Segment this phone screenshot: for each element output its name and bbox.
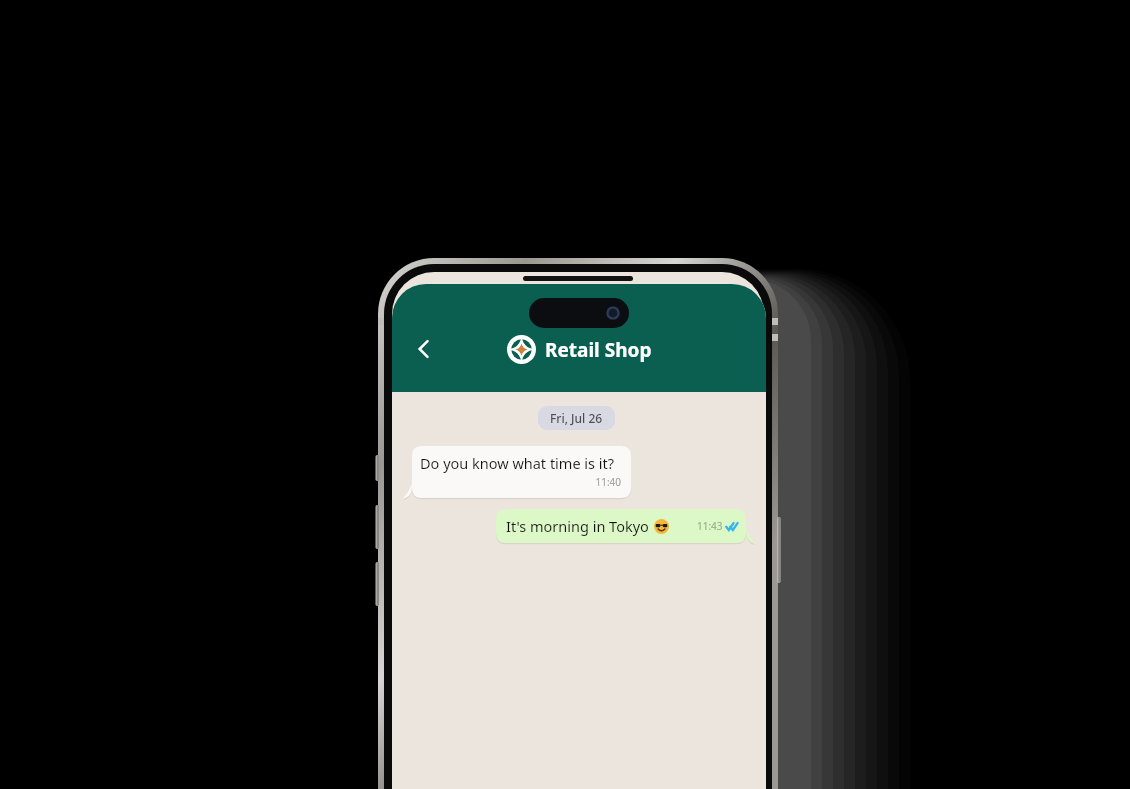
staticText: Do you know what time is it? bbox=[420, 453, 615, 473]
staticText: 11:43 bbox=[697, 519, 723, 533]
staticText: 11:40 bbox=[420, 475, 621, 489]
button[interactable]: Back bbox=[404, 329, 444, 369]
staticText: It's morning in Tokyo bbox=[506, 516, 649, 536]
staticText: Fri, Jul 26 bbox=[550, 410, 603, 426]
staticText: Retail Shop bbox=[545, 337, 652, 363]
button[interactable]: Retail Shop bbox=[507, 335, 652, 364]
